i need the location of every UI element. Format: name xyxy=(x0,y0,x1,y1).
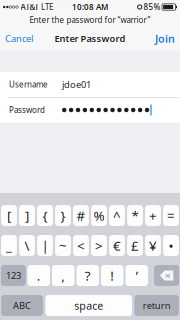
button[interactable]: ¥ xyxy=(145,235,161,256)
button[interactable]: { xyxy=(37,205,53,226)
button[interactable]: Cancel xyxy=(0,26,45,51)
button[interactable]: ’ xyxy=(125,265,148,286)
button[interactable]: + xyxy=(145,205,161,226)
staticText: ? xyxy=(85,267,91,284)
button[interactable]: £ xyxy=(127,235,143,256)
staticText: LTE xyxy=(41,2,53,12)
staticText: Cancel xyxy=(5,32,33,45)
button[interactable]: _ xyxy=(1,235,17,256)
staticText: € xyxy=(113,237,121,254)
button[interactable]: € xyxy=(109,235,125,256)
staticText: space xyxy=(74,298,103,313)
button[interactable]: ^ xyxy=(109,205,125,226)
staticText: 10:08 AM xyxy=(72,2,108,12)
staticText: \ xyxy=(24,237,29,254)
staticText: % xyxy=(93,207,104,224)
staticText: 123 xyxy=(6,269,21,282)
button[interactable]: Delete xyxy=(154,265,179,286)
button[interactable]: ? xyxy=(76,265,99,286)
button[interactable]: # xyxy=(73,205,89,226)
staticText: + xyxy=(149,207,157,224)
staticText: Username xyxy=(9,79,48,90)
staticText: Enter the password for “warrior” xyxy=(29,15,150,25)
button[interactable]: . xyxy=(27,265,50,286)
button[interactable]: ! xyxy=(101,265,123,286)
button[interactable]: return xyxy=(134,295,179,316)
button[interactable]: = xyxy=(163,205,179,226)
staticText: ~ xyxy=(59,237,67,254)
button[interactable]: ] xyxy=(19,205,35,226)
button[interactable]: 123 xyxy=(1,265,26,286)
staticText: AT&T xyxy=(21,2,39,12)
button[interactable]: * xyxy=(127,205,143,226)
staticText: return xyxy=(143,299,171,312)
staticText: _ xyxy=(6,237,12,254)
staticText: • xyxy=(168,237,173,254)
staticText: Enter Password xyxy=(54,32,125,45)
staticText: | xyxy=(41,237,48,254)
staticText: * xyxy=(131,207,138,224)
button[interactable]: , xyxy=(52,265,74,286)
staticText: > xyxy=(95,237,103,254)
button[interactable]: < xyxy=(73,235,89,256)
button[interactable]: \ xyxy=(19,235,35,256)
staticText: Join xyxy=(155,31,175,46)
button[interactable]: ABC xyxy=(1,295,43,316)
staticText: { xyxy=(42,207,47,224)
staticText: # xyxy=(76,207,85,224)
staticText: , xyxy=(61,267,65,284)
staticText: £ xyxy=(131,237,139,254)
staticText: ! xyxy=(110,267,114,284)
staticText: Password xyxy=(9,105,45,115)
staticText: ABC xyxy=(13,299,31,312)
staticText: ¥ xyxy=(149,237,157,254)
staticText: jdoe01 xyxy=(62,78,91,91)
button[interactable]: | xyxy=(37,235,53,256)
staticText: < xyxy=(77,237,85,254)
button[interactable]: > xyxy=(91,235,107,256)
button[interactable]: • xyxy=(163,235,179,256)
staticText: . xyxy=(37,267,41,284)
staticText: ] xyxy=(25,207,29,224)
staticText: = xyxy=(167,207,175,224)
staticText: ’ xyxy=(136,267,138,284)
staticText: ^ xyxy=(113,207,121,224)
button[interactable]: Join xyxy=(145,26,180,51)
button[interactable]: } xyxy=(55,205,71,226)
staticText: 85% xyxy=(143,2,160,12)
button[interactable]: space xyxy=(45,295,132,316)
staticText: } xyxy=(60,207,65,224)
button[interactable]: [ xyxy=(1,205,17,226)
button[interactable]: % xyxy=(91,205,107,226)
button[interactable]: ~ xyxy=(55,235,71,256)
staticText: [ xyxy=(7,207,11,224)
